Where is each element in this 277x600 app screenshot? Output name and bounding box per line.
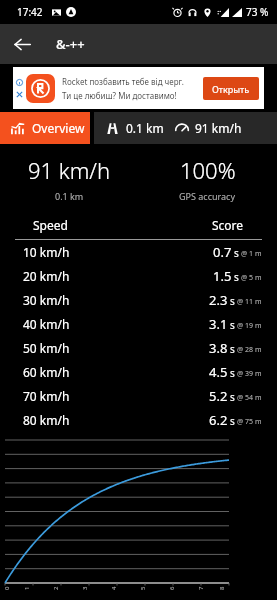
- staticText: @ 5 m: [241, 273, 262, 283]
- button[interactable]: 20 km/h: [0, 264, 277, 288]
- staticText: s: [234, 246, 239, 260]
- staticText: 60 km/h: [23, 364, 70, 380]
- staticText: s: [230, 414, 235, 428]
- staticText: 8: [218, 586, 226, 590]
- staticText: 91 km/h: [195, 120, 242, 136]
- staticText: @ 54 m: [237, 393, 262, 403]
- staticText: s: [230, 366, 235, 380]
- staticText: @ 1 m: [241, 249, 262, 259]
- staticText: 100%: [180, 155, 236, 185]
- staticText: Overview: [32, 120, 85, 136]
- staticText: @ 75 m: [237, 417, 262, 427]
- button[interactable]: 10 km/h: [0, 240, 277, 264]
- staticText: Score: [212, 217, 244, 233]
- staticText: 0.1 km: [55, 190, 84, 202]
- staticText: 2: [52, 586, 60, 590]
- staticText: 6.2: [209, 411, 228, 429]
- staticText: @ 19 m: [237, 321, 262, 331]
- staticText: 20 km/h: [23, 268, 70, 284]
- staticText: 30 km/h: [23, 292, 70, 308]
- staticText: 5: [139, 586, 147, 590]
- staticText: 0.7: [213, 243, 232, 261]
- button[interactable]: Back: [6, 28, 38, 60]
- staticText: 2.3: [209, 291, 228, 309]
- staticText: @ 39 m: [237, 369, 262, 379]
- staticText: 1: [23, 586, 31, 590]
- staticText: 3.1: [209, 315, 228, 333]
- staticText: Ти це любиш? Ми доставимо!: [62, 90, 177, 101]
- other: Close ad: [16, 91, 23, 98]
- staticText: 7: [197, 586, 205, 590]
- staticText: 70 km/h: [23, 388, 70, 404]
- staticText: 4: [110, 586, 118, 590]
- staticText: @ 28 m: [237, 345, 262, 355]
- button[interactable]: Overview: [0, 112, 90, 144]
- staticText: @ 11 m: [237, 297, 262, 307]
- staticText: 3.8: [209, 339, 228, 357]
- staticText: 3: [81, 586, 89, 590]
- staticText: 80 km/h: [23, 412, 70, 428]
- staticText: 73 %: [246, 5, 269, 19]
- button[interactable]: 80 km/h: [0, 408, 277, 432]
- staticText: s: [230, 318, 235, 332]
- staticText: Speed: [33, 217, 68, 233]
- staticText: s: [230, 294, 235, 308]
- staticText: Rocket позбавить тебе від черг.: [62, 76, 184, 87]
- staticText: 91 km/h: [28, 155, 111, 185]
- staticText: 10 km/h: [23, 244, 70, 260]
- staticText: s: [230, 342, 235, 356]
- staticText: 1.5: [213, 267, 232, 285]
- staticText: 5.2: [209, 387, 228, 405]
- staticText: 50 km/h: [23, 340, 70, 356]
- other: Ad info: [16, 79, 23, 86]
- staticText: Открыть: [212, 83, 250, 95]
- button[interactable]: Открыть: [203, 77, 259, 100]
- staticText: &-++: [56, 35, 85, 53]
- button[interactable]: 60 km/h: [0, 360, 277, 384]
- button[interactable]: 30 km/h: [0, 288, 277, 312]
- staticText: 0: [3, 586, 11, 590]
- button[interactable]: 40 km/h: [0, 312, 277, 336]
- staticText: s: [230, 390, 235, 404]
- button[interactable]: 70 km/h: [0, 384, 277, 408]
- button[interactable]: 50 km/h: [0, 336, 277, 360]
- staticText: 40 km/h: [23, 316, 70, 332]
- staticText: s: [234, 270, 239, 284]
- staticText: 17:42: [17, 5, 43, 19]
- staticText: GPS accuracy: [179, 190, 236, 202]
- staticText: 0.1 km: [126, 120, 164, 136]
- staticText: 6: [168, 586, 176, 590]
- staticText: 4.5: [209, 363, 228, 381]
- button[interactable]: 0.1 km: [94, 112, 277, 144]
